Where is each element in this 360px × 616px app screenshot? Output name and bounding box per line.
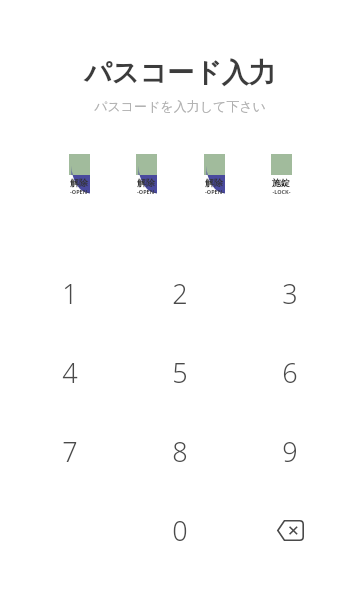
staticText: 4 xyxy=(62,354,78,391)
button[interactable]: 9 xyxy=(235,412,345,491)
staticText: -OPEN- xyxy=(70,188,89,195)
button[interactable]: 施錠 LOCK xyxy=(258,154,304,195)
staticText: 解除 xyxy=(70,177,88,188)
button[interactable]: Backspace xyxy=(235,491,345,570)
button[interactable]: 8 xyxy=(125,412,235,491)
staticText: 8 xyxy=(172,433,188,470)
staticText: 0 xyxy=(172,512,188,549)
button[interactable]: 4 xyxy=(15,333,125,412)
staticText: -OPEN- xyxy=(205,188,224,195)
button[interactable]: 7 xyxy=(15,412,125,491)
button[interactable]: 3 xyxy=(235,254,345,333)
staticText: 施錠 xyxy=(272,177,290,188)
staticText: 7 xyxy=(62,433,78,470)
button[interactable]: 0 xyxy=(125,491,235,570)
button[interactable]: 解除 OPEN xyxy=(56,154,102,195)
staticText: パスコードを入力して下さい xyxy=(94,98,266,114)
staticText: 6 xyxy=(282,354,298,391)
button[interactable]: 解除 OPEN xyxy=(191,154,237,195)
staticText: -OPEN- xyxy=(137,188,156,195)
staticText: 解除 xyxy=(137,177,155,188)
staticText: 3 xyxy=(282,275,298,312)
button[interactable]: 2 xyxy=(125,254,235,333)
staticText: 5 xyxy=(172,354,188,391)
staticText: 9 xyxy=(282,433,298,470)
button[interactable]: 6 xyxy=(235,333,345,412)
staticText: 解除 xyxy=(205,177,223,188)
staticText: 2 xyxy=(172,275,188,312)
staticText: 1 xyxy=(62,275,78,312)
staticText: -LOCK- xyxy=(272,188,291,195)
staticText: パスコード入力 xyxy=(84,56,276,90)
button[interactable]: 解除 OPEN xyxy=(123,154,169,195)
button[interactable]: 1 xyxy=(15,254,125,333)
button[interactable]: 5 xyxy=(125,333,235,412)
